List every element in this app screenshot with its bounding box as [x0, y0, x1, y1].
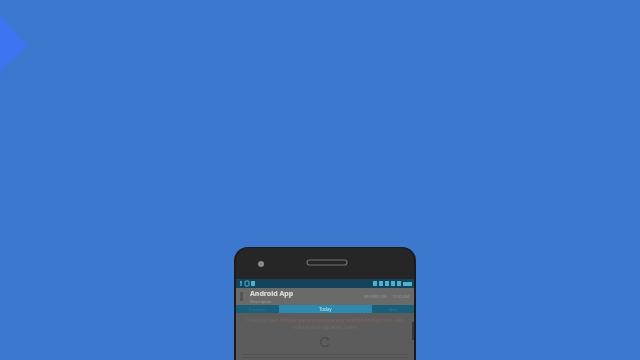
staticText: Today: [319, 306, 332, 312]
button[interactable]: Previous: [236, 305, 279, 313]
staticText: to build your app when I want: [293, 324, 357, 330]
button[interactable]: Refresh: [318, 335, 332, 349]
staticText: Previous: [249, 307, 266, 312]
staticText: Next: [389, 307, 398, 312]
staticText: 10:02 AM: [392, 294, 410, 299]
staticText: Android App: [250, 289, 294, 299]
staticText: Code your own Android App and leverage y…: [246, 317, 404, 323]
button[interactable]: Today: [279, 305, 372, 313]
staticText: Description: [250, 299, 272, 304]
staticText: BEHIND ON: [364, 294, 387, 299]
button[interactable]: Menu: [236, 288, 414, 305]
